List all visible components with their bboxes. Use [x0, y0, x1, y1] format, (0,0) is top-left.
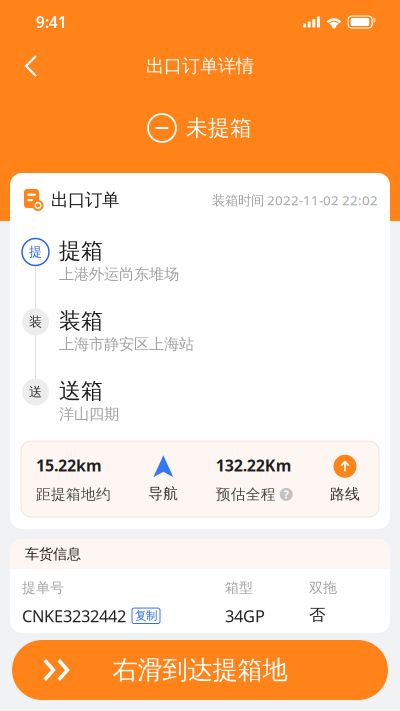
staticText: 送箱 — [59, 377, 103, 405]
staticText: 距提箱地约 — [36, 485, 111, 504]
staticText: 装箱时间 2022-11-02 22:02 — [212, 191, 378, 209]
staticText: 双拖 — [309, 579, 337, 597]
button[interactable]: 右滑到达提箱地 — [12, 640, 388, 700]
staticText: 未提箱 — [186, 114, 252, 142]
staticText: 上港外运尚东堆场 — [59, 265, 179, 284]
staticText: 提 — [29, 244, 42, 260]
staticText: 34GP — [225, 605, 265, 627]
staticText: 提单号 — [22, 579, 64, 597]
staticText: 预估全程 — [216, 485, 276, 504]
staticText: 复制 — [135, 609, 157, 623]
staticText: 15.22km — [36, 454, 102, 476]
staticText: 提箱 — [59, 237, 103, 265]
staticText: 出口订单 — [51, 189, 119, 211]
button[interactable]: Back — [0, 44, 54, 87]
staticText: 导航 — [148, 484, 178, 503]
staticText: 箱型 — [225, 579, 253, 597]
staticText: CNKE3232442 — [22, 605, 126, 627]
button[interactable]: 导航 — [141, 455, 185, 503]
staticText: 装 — [29, 314, 42, 330]
staticText: 车货信息 — [25, 545, 81, 563]
staticText: 路线 — [330, 485, 360, 503]
staticText: ? — [284, 487, 289, 502]
staticText: 否 — [309, 605, 325, 625]
staticText: 送 — [29, 384, 42, 400]
staticText: 出口订单详情 — [146, 55, 254, 77]
staticText: 右滑到达提箱地 — [112, 654, 287, 686]
button[interactable]: 复制 — [132, 608, 160, 623]
button[interactable]: 路线 — [323, 455, 367, 503]
staticText: 洋山四期 — [59, 405, 119, 424]
staticText: 9:41 — [36, 12, 67, 32]
staticText: 132.22Km — [216, 454, 292, 476]
staticText: 装箱 — [59, 307, 103, 335]
staticText: 上海市静安区上海站 — [59, 335, 194, 354]
